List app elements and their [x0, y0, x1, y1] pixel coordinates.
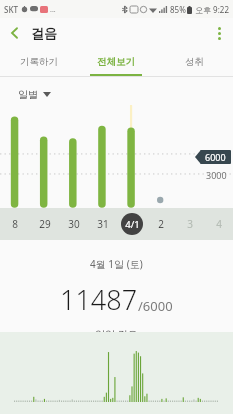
- button[interactable]: 일별: [18, 88, 51, 101]
- staticText: 30: [68, 217, 80, 231]
- staticText: 85%: [170, 4, 186, 15]
- button[interactable]: 30: [59, 208, 88, 240]
- staticText: 걸음: [31, 25, 57, 41]
- staticText: 성취: [185, 56, 204, 68]
- staticText: 3: [187, 217, 193, 231]
- button[interactable]: 4/1: [117, 208, 146, 240]
- staticText: 기록하기: [20, 56, 58, 68]
- staticText: 4: [216, 217, 222, 231]
- button[interactable]: 전체보기: [77, 48, 155, 76]
- button[interactable]: 4: [204, 208, 233, 240]
- staticText: 일별: [18, 88, 38, 101]
- staticText: SKT: [4, 4, 18, 15]
- staticText: 29: [39, 217, 51, 231]
- staticText: 31: [97, 217, 109, 231]
- button[interactable]: 2: [146, 208, 175, 240]
- button[interactable]: 성취: [155, 48, 233, 76]
- button[interactable]: 29: [30, 208, 59, 240]
- staticText: ...: [50, 5, 56, 15]
- staticText: 2: [158, 217, 164, 231]
- staticText: 전체보기: [97, 56, 135, 68]
- staticText: 4/1: [125, 218, 140, 231]
- staticText: 3000: [206, 169, 227, 181]
- button[interactable]: More options: [205, 19, 233, 47]
- staticText: 오후 9:22: [195, 4, 229, 15]
- button[interactable]: 31: [88, 208, 117, 240]
- button[interactable]: Back: [0, 19, 28, 47]
- button[interactable]: 기록하기: [0, 48, 77, 76]
- button[interactable]: 3: [175, 208, 204, 240]
- staticText: 6000: [205, 151, 226, 163]
- button[interactable]: 8: [0, 208, 30, 240]
- staticText: 8: [12, 217, 18, 231]
- staticText: 일일 걸음: [95, 327, 138, 332]
- staticText: 4월 1일 (토): [90, 257, 143, 271]
- staticText: /6000: [138, 297, 173, 315]
- staticText: 11487: [60, 281, 138, 318]
